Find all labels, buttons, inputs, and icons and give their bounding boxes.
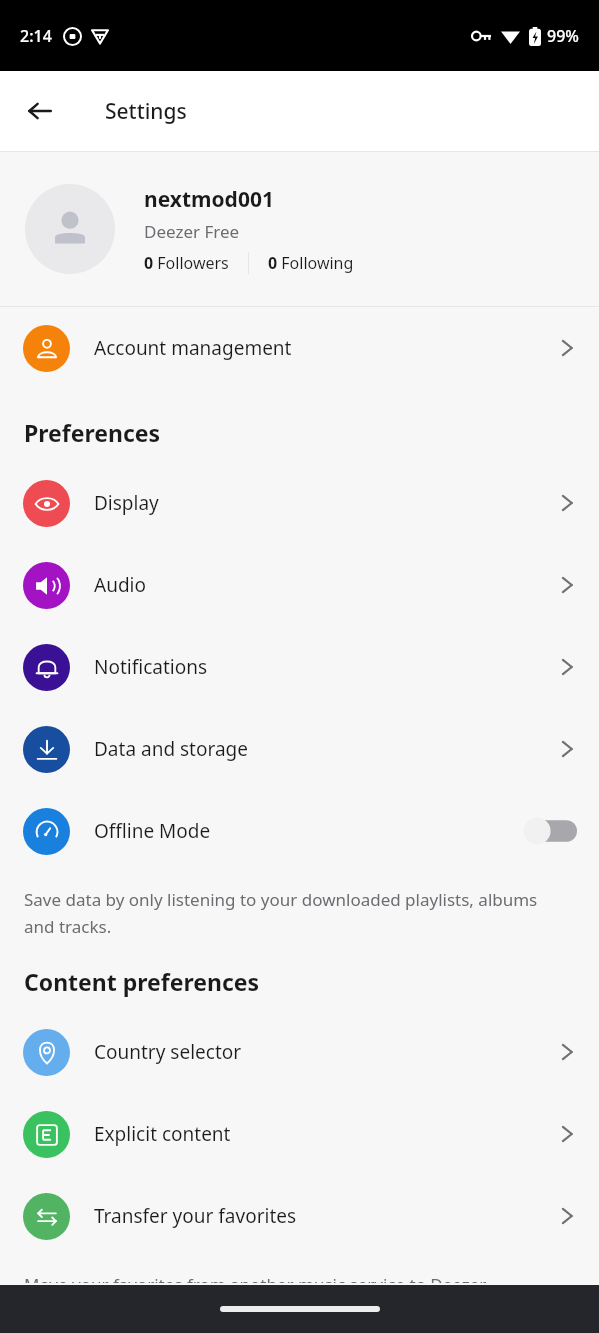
staticText: Display xyxy=(94,490,555,516)
other: Open Display xyxy=(555,492,577,514)
staticText: Country selector xyxy=(94,1039,555,1065)
staticText: Offline Mode xyxy=(94,818,523,844)
button[interactable]: Notifications xyxy=(0,626,599,708)
button[interactable]: Audio xyxy=(0,544,599,626)
button[interactable]: Country selector xyxy=(0,1011,599,1093)
staticText: Audio xyxy=(94,572,555,598)
other: Open Notifications xyxy=(555,656,577,678)
other: Open Country selector xyxy=(555,1041,577,1063)
staticText: Move your favorites from another music s… xyxy=(24,1273,559,1283)
other: Open Account management xyxy=(555,337,577,359)
staticText: Notifications xyxy=(94,654,555,680)
staticText: Data and storage xyxy=(94,736,555,762)
button[interactable]: Explicit content xyxy=(0,1093,599,1175)
other: Open Transfer your favorites xyxy=(555,1205,577,1227)
staticText: Explicit content xyxy=(94,1121,555,1147)
other: Open Audio xyxy=(555,574,577,596)
button[interactable]: 0 Followers xyxy=(144,252,229,274)
button[interactable]: 0 Following xyxy=(268,252,354,274)
staticText: Content preferences xyxy=(24,966,599,997)
staticText: 99% xyxy=(547,25,579,47)
staticText: Deezer Free xyxy=(144,220,240,243)
staticText: Transfer your favorites xyxy=(94,1203,555,1229)
other: Open Explicit content xyxy=(555,1123,577,1145)
staticText: Settings xyxy=(105,97,187,126)
staticText: Preferences xyxy=(24,417,599,448)
button[interactable]: Offline Mode toggle xyxy=(523,816,577,846)
button[interactable]: Back xyxy=(16,87,64,135)
button[interactable]: Offline Mode xyxy=(0,790,599,872)
button[interactable]: Display xyxy=(0,462,599,544)
button[interactable]: Transfer your favorites xyxy=(0,1175,599,1257)
other: Open Data and storage xyxy=(555,738,577,760)
staticText: Save data by only listening to your down… xyxy=(24,888,559,938)
button[interactable]: Data and storage xyxy=(0,708,599,790)
button[interactable]: Account management xyxy=(0,307,599,389)
staticText: nextmod001 xyxy=(144,185,274,214)
staticText: 2:14 xyxy=(20,25,52,47)
staticText: Account management xyxy=(94,335,555,361)
